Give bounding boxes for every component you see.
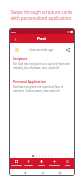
staticText: Post bbox=[37, 36, 47, 42]
staticText: Scripture bbox=[13, 57, 28, 61]
button[interactable]: Share bbox=[64, 46, 71, 53]
button[interactable]: Back bbox=[11, 35, 19, 43]
staticText: a few seconds ago bbox=[29, 48, 54, 52]
staticText: God has not given me a spirit of fear or… bbox=[13, 85, 71, 89]
staticText: For God has not given us a spirit of fea… bbox=[13, 62, 70, 66]
staticText: Devotional bbox=[49, 164, 60, 167]
button[interactable]: Recents bbox=[57, 170, 62, 175]
button[interactable]: Dashboard bbox=[10, 158, 22, 169]
button[interactable]: Devotional bbox=[48, 158, 61, 169]
button[interactable]: Scripture bbox=[22, 158, 35, 169]
staticText: Swipe through scripture cards bbox=[3, 9, 80, 15]
button[interactable]: Prayer bbox=[35, 158, 48, 169]
staticText: Prayer bbox=[38, 164, 45, 167]
staticText: More bbox=[65, 164, 70, 167]
button[interactable]: Favorite bbox=[13, 46, 20, 53]
staticText: Scripture bbox=[24, 164, 33, 167]
staticText: Dashboard bbox=[11, 164, 22, 167]
button[interactable]: More bbox=[61, 158, 74, 169]
staticText: with personalized application. bbox=[3, 15, 80, 21]
staticText: moment. I have power, love and self-disc… bbox=[13, 89, 71, 93]
button[interactable]: Home bbox=[40, 170, 45, 175]
staticText: Personal Application bbox=[13, 80, 46, 84]
staticText: 9:41 bbox=[11, 30, 16, 33]
button[interactable]: Back bbox=[22, 170, 27, 175]
staticText: timidity, but of power, love, and self-d… bbox=[13, 66, 71, 70]
